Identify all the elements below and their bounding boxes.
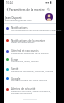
staticText: Notifications de la montre xyxy=(11,39,46,43)
staticText: Paramètres de la montre xyxy=(9,8,45,12)
staticText: Général et raccourcis xyxy=(11,49,39,53)
button[interactable] xyxy=(4,25,56,34)
staticText: Gérer les applications xyxy=(11,41,35,44)
staticText: Notifications xyxy=(11,26,28,30)
button[interactable]: Retour xyxy=(4,6,11,13)
button[interactable] xyxy=(4,12,56,23)
button[interactable] xyxy=(4,75,56,84)
staticText: Jean Dupont xyxy=(5,16,22,20)
button[interactable] xyxy=(4,86,56,97)
staticText: partage de position xyxy=(11,92,33,95)
button[interactable] xyxy=(4,66,56,75)
button[interactable] xyxy=(4,48,56,57)
button[interactable] xyxy=(4,56,56,65)
button[interactable]: Compte Google xyxy=(45,13,53,21)
staticText: 10:24 xyxy=(6,1,13,5)
button[interactable] xyxy=(4,37,56,46)
staticText: Google xyxy=(11,77,21,81)
staticText: Les notifications de votre téléphone s'a… xyxy=(11,29,63,32)
staticText: Luminosité, veille, cadran xyxy=(11,60,39,63)
staticText: Alertes de sécurité xyxy=(11,87,36,91)
staticText: Paramètres généraux de la montre xyxy=(11,52,49,55)
staticText: Services Google sur votre montre xyxy=(11,79,47,82)
staticText: Détection de chute, appel d'urgence, xyxy=(11,90,51,93)
staticText: Santé xyxy=(11,67,19,71)
staticText: Écran xyxy=(11,58,19,62)
button[interactable]: Rechercher xyxy=(45,6,52,13)
staticText: jean.dupont@gmail.com xyxy=(5,19,32,22)
staticText: Fréquence cardiaque, sommeil, activité xyxy=(11,70,54,73)
